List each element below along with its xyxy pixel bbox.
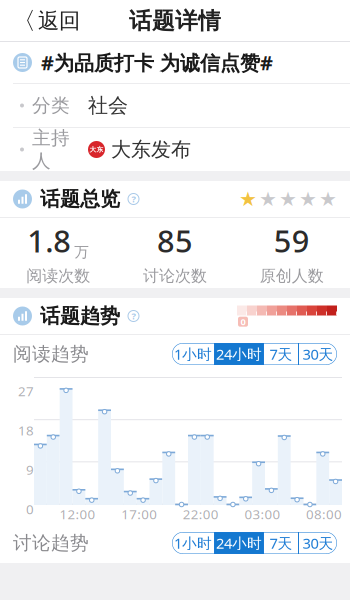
staticText: 59 (274, 220, 310, 261)
staticText: 08:00 (306, 505, 342, 523)
button[interactable]: 7天 (264, 343, 298, 365)
staticText: 讨论趋势 (13, 531, 89, 554)
staticText: 7天 (269, 533, 292, 553)
staticText: 0 (26, 500, 34, 518)
staticText: 9 (26, 461, 34, 478)
staticText: 18 (18, 421, 34, 439)
staticText: 17:00 (121, 505, 157, 523)
staticText: #为品质打卡 为诚信点赞# (41, 49, 273, 76)
staticText: 社会 (88, 93, 128, 118)
staticText: ★ (299, 188, 317, 210)
staticText: 22:00 (183, 505, 219, 523)
staticText: 03:00 (244, 505, 280, 523)
staticText: 大东发布 (111, 137, 191, 162)
staticText: 原创人数 (260, 266, 324, 286)
staticText: 7天 (269, 344, 292, 364)
staticText: 阅读次数 (26, 266, 90, 286)
staticText: 万 (74, 243, 89, 261)
staticText: 阅读趋势 (13, 342, 89, 365)
staticText: 话题总览 (40, 187, 120, 211)
staticText: 1.8 (27, 220, 71, 261)
staticText: ★ (279, 188, 297, 210)
button[interactable]: 〈 (0, 0, 92, 42)
staticText: 24小时 (216, 344, 262, 364)
button[interactable]: 24小时 (215, 343, 263, 365)
staticText: 1小时 (174, 344, 212, 364)
staticText: ? (131, 193, 135, 205)
staticText: ★ (319, 188, 337, 210)
staticText: 〈 (12, 6, 36, 36)
staticText: 讨论次数 (143, 266, 207, 286)
staticText: 30天 (302, 344, 333, 364)
staticText: 85 (157, 220, 193, 261)
staticText: 话题详情 (129, 7, 221, 35)
staticText: 12:00 (60, 505, 96, 523)
staticText: ★ (259, 188, 277, 210)
staticText: 24小时 (216, 533, 262, 553)
staticText: 30天 (302, 533, 333, 553)
staticText: 分类 (32, 94, 70, 117)
staticText: 返回 (38, 8, 80, 34)
button[interactable]: 7天 (264, 532, 298, 554)
staticText: 0 (240, 315, 245, 328)
staticText: ★ (239, 188, 257, 210)
staticText: 主持人 (32, 127, 70, 172)
staticText: ? (131, 310, 135, 322)
button[interactable]: 30天 (299, 343, 337, 365)
staticText: 27 (18, 382, 34, 400)
button[interactable]: 30天 (299, 532, 337, 554)
staticText: 话题趋势 (40, 304, 120, 328)
button[interactable]: 1小时 (172, 532, 214, 554)
button[interactable]: 24小时 (215, 532, 263, 554)
button[interactable]: 1小时 (172, 343, 214, 365)
staticText: 1小时 (174, 533, 212, 553)
staticText: 大东 (89, 145, 103, 154)
